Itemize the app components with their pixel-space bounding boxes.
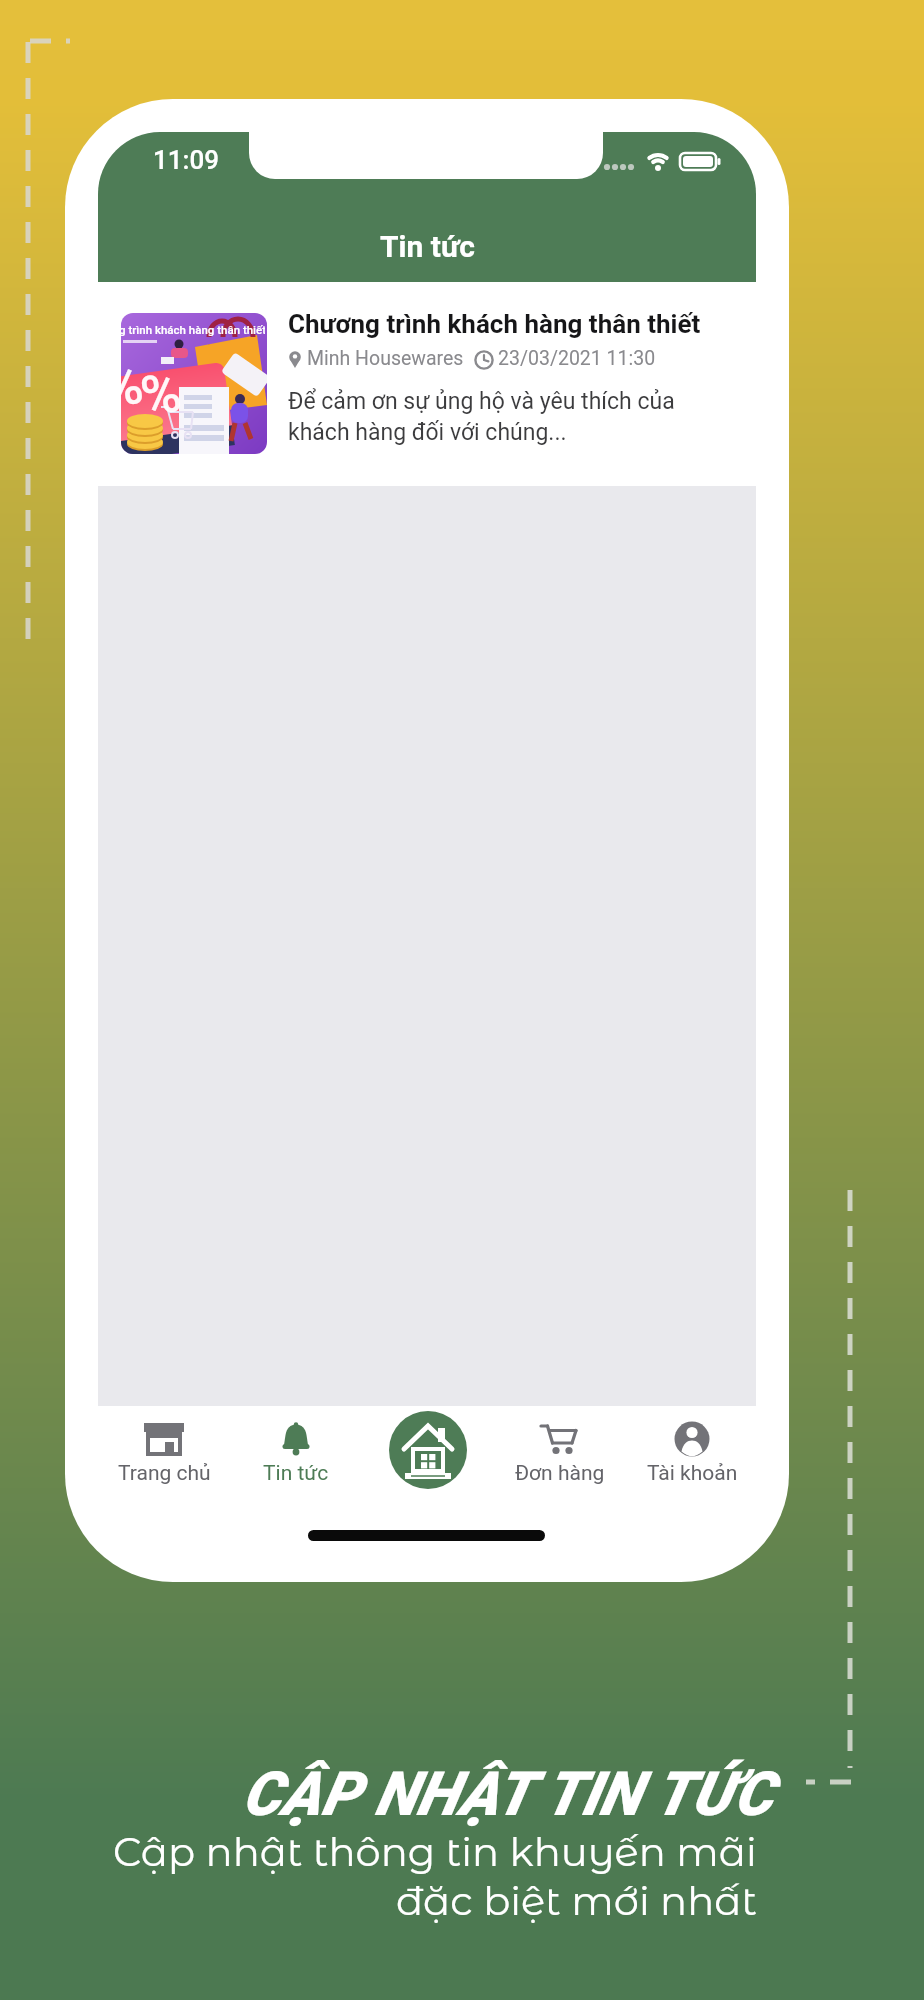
staticText: Tài khoản (647, 1461, 738, 1486)
staticText: CẬP NHẬT TIN TỨC (242, 1758, 773, 1829)
staticText: đặc biệt mới nhất (396, 1876, 757, 1925)
button[interactable]: Tin tức (230, 1420, 362, 1486)
staticText: % (121, 352, 147, 420)
staticText: Chương trình khách hàng thân thiết (288, 309, 701, 339)
staticText: Tin tức (380, 229, 475, 264)
staticText: 11:09 (153, 145, 220, 175)
staticText: Đơn hàng (515, 1461, 605, 1486)
button[interactable]: Tài khoản (626, 1420, 756, 1486)
button[interactable]: Đơn hàng (494, 1420, 626, 1486)
staticText: Trang chủ (118, 1461, 211, 1486)
staticText: Để cảm ơn sự ủng hộ và yêu thích của khá… (288, 388, 675, 445)
button[interactable]: Trang chủ (98, 1420, 230, 1486)
staticText: Minh Housewares (307, 347, 464, 370)
staticText: Cập nhật thông tin khuyến mãi (113, 1827, 757, 1876)
button[interactable] (389, 1411, 467, 1489)
staticText: Tin tức (263, 1461, 329, 1486)
button[interactable]: g trình khách hàng thân thiết (98, 282, 756, 486)
staticText: % (137, 360, 185, 428)
staticText: 23/03/2021 11:30 (498, 347, 656, 370)
staticText: g trình khách hàng thân thiết (121, 323, 265, 336)
